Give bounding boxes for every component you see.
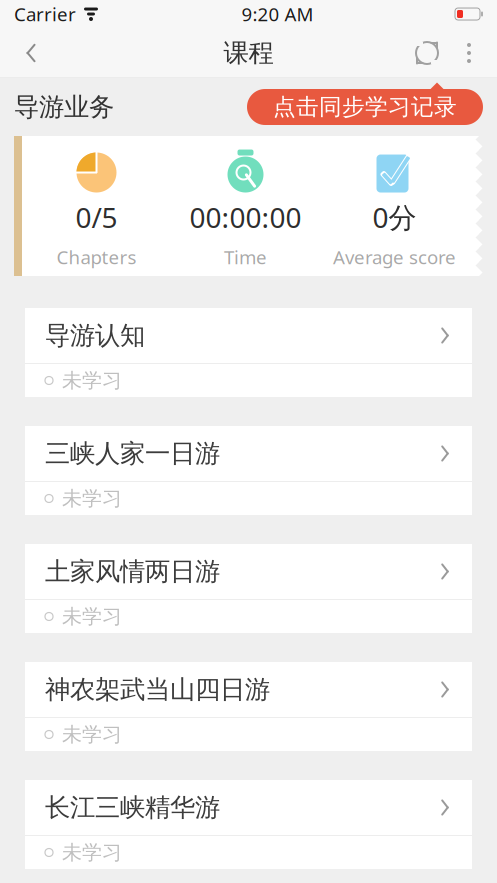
button[interactable]: 长江三峡精华游 xyxy=(25,780,472,869)
staticText: 未学习 xyxy=(62,722,122,747)
button[interactable]: 土家风情两日游 xyxy=(25,544,472,633)
staticText: 三峡人家一日游 xyxy=(45,438,220,469)
button[interactable]: Refresh xyxy=(405,31,449,75)
staticText: 9:20 AM xyxy=(241,2,313,26)
button[interactable]: 点击同步学习记录 xyxy=(247,89,483,125)
staticText: 导游业务 xyxy=(14,91,114,122)
staticText: 未学习 xyxy=(62,840,122,865)
staticText: 神农架武当山四日游 xyxy=(45,674,270,705)
button[interactable]: More options xyxy=(449,31,489,75)
staticText: 未学习 xyxy=(62,368,122,393)
staticText: Carrier xyxy=(14,2,76,26)
button[interactable]: 神农架武当山四日游 xyxy=(25,662,472,751)
staticText: 点击同步学习记录 xyxy=(273,93,457,121)
staticText: 0分 xyxy=(372,198,416,236)
staticText: Average score xyxy=(333,245,456,269)
button[interactable]: 三峡人家一日游 xyxy=(25,426,472,515)
button[interactable]: 导游认知 xyxy=(25,308,472,397)
staticText: 课程 xyxy=(223,37,273,68)
staticText: 长江三峡精华游 xyxy=(45,792,220,823)
staticText: 0/5 xyxy=(75,198,117,236)
staticText: 未学习 xyxy=(62,604,122,629)
staticText: Chapters xyxy=(56,245,136,269)
staticText: 土家风情两日游 xyxy=(45,556,220,587)
button[interactable]: Back xyxy=(8,31,54,75)
staticText: 导游认知 xyxy=(45,320,145,351)
staticText: Time xyxy=(224,245,267,269)
staticText: 00:00:00 xyxy=(189,198,301,236)
staticText: 未学习 xyxy=(62,486,122,511)
